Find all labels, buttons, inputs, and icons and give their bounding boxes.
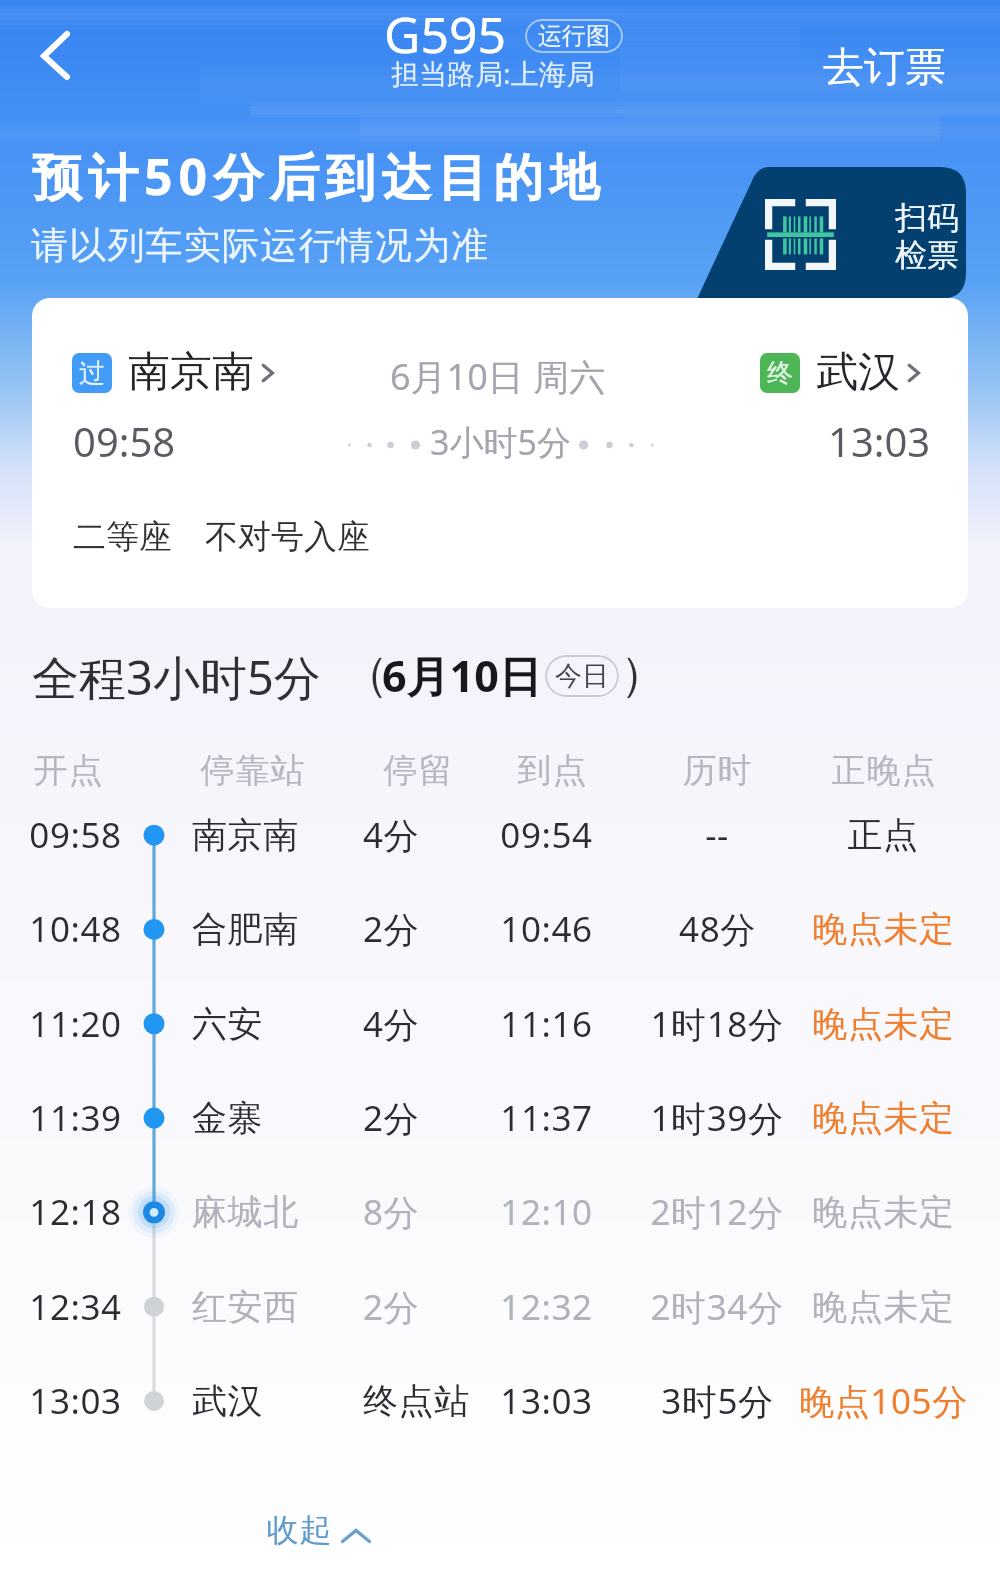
staticText: 4分	[363, 1000, 420, 1048]
staticText: 晚点未定	[812, 907, 955, 951]
staticText: 麻城北	[192, 1190, 299, 1234]
staticText: 晚点未定	[812, 1285, 955, 1329]
button[interactable]: 过	[32, 298, 968, 608]
staticText: 09:58	[29, 811, 122, 859]
staticText: 11:20	[29, 1000, 122, 1048]
staticText: 晚点未定	[812, 1190, 955, 1234]
staticText: 今日	[555, 659, 609, 693]
staticText: 预计50分后到达目的地	[32, 142, 606, 210]
button[interactable]: 去订票	[811, 30, 958, 106]
staticText: 过	[79, 357, 105, 390]
staticText: 12:32	[500, 1283, 593, 1331]
staticText: 不对号入座	[205, 516, 370, 558]
staticText: 12:34	[29, 1283, 122, 1331]
staticText: 2分	[363, 905, 420, 953]
staticText: 晚点未定	[812, 1002, 955, 1046]
staticText: 停靠站	[200, 749, 305, 792]
staticText: 12:10	[500, 1188, 593, 1236]
staticText: 终点站	[363, 1379, 470, 1423]
staticText: 4分	[363, 811, 420, 859]
staticText: 12:18	[29, 1188, 122, 1236]
staticText: 48分	[679, 905, 756, 953]
staticText: 13:03	[29, 1377, 122, 1425]
staticText: 09:58	[73, 414, 176, 468]
staticText: 二等座	[73, 516, 172, 558]
staticText: 8分	[363, 1188, 420, 1236]
staticText: 合肥南	[192, 907, 299, 951]
staticText: 1时39分	[650, 1094, 784, 1142]
staticText: 历时	[682, 749, 752, 792]
staticText: 10:46	[500, 905, 593, 953]
staticText: 2时34分	[650, 1283, 784, 1331]
staticText: 2分	[363, 1094, 420, 1142]
staticText: 扫码	[895, 198, 959, 238]
button[interactable]: Back	[14, 18, 98, 94]
staticText: 正晚点	[831, 749, 936, 792]
staticText: 3时5分	[661, 1377, 774, 1425]
staticText: --	[705, 811, 729, 859]
staticText: 到点	[517, 749, 587, 792]
staticText: 收起	[266, 1510, 332, 1550]
staticText: 运行图	[538, 21, 610, 51]
staticText: 11:37	[500, 1094, 593, 1142]
button[interactable]: 12:34	[0, 1260, 1000, 1354]
button[interactable]: 11:39	[0, 1071, 1000, 1165]
button[interactable]: 扫码检票	[688, 167, 966, 299]
staticText: 6月10日 周六	[390, 352, 606, 401]
staticText: 11:39	[29, 1094, 122, 1142]
staticText: 11:16	[500, 1000, 593, 1048]
staticText: 10:48	[29, 905, 122, 953]
staticText: 武汉	[816, 346, 900, 399]
staticText: 终	[767, 357, 793, 390]
staticText: （	[342, 645, 389, 704]
staticText: 2分	[363, 1283, 420, 1331]
staticText: G595	[384, 0, 507, 68]
staticText: 南京南	[192, 813, 299, 857]
button[interactable]: 12:18	[0, 1165, 1000, 1259]
staticText: 全程3小时5分	[32, 645, 321, 709]
staticText: 09:54	[500, 811, 593, 859]
staticText: 晚点未定	[812, 1096, 955, 1140]
staticText: 检票	[895, 235, 959, 275]
staticText: 武汉	[192, 1379, 264, 1423]
staticText: 六安	[192, 1002, 264, 1046]
staticText: 1时18分	[650, 1000, 784, 1048]
button[interactable]: 收起	[247, 1494, 392, 1566]
staticText: 南京南	[128, 346, 254, 399]
staticText: 停留	[383, 749, 453, 792]
staticText: 担当路局:上海局	[391, 54, 595, 92]
staticText: 正点	[847, 813, 919, 857]
staticText: 13:03	[500, 1377, 593, 1425]
staticText: 红安西	[192, 1285, 299, 1329]
staticText: 13:03	[828, 414, 931, 468]
button[interactable]: 09:58	[0, 788, 1000, 882]
staticText: 3小时5分	[430, 419, 571, 465]
staticText: 6月10日	[382, 646, 542, 705]
button[interactable]: 运行图	[525, 19, 623, 53]
button[interactable]: 10:48	[0, 882, 1000, 976]
button[interactable]: 13:03	[0, 1354, 1000, 1448]
staticText: 去订票	[823, 42, 946, 94]
staticText: 开点	[33, 749, 103, 792]
staticText: 2时12分	[650, 1188, 784, 1236]
staticText: 金寨	[192, 1096, 264, 1140]
staticText: 请以列车实际运行情况为准	[31, 222, 490, 269]
staticText: ）	[620, 645, 667, 704]
staticText: 晚点105分	[799, 1377, 968, 1425]
button[interactable]: 11:20	[0, 977, 1000, 1071]
